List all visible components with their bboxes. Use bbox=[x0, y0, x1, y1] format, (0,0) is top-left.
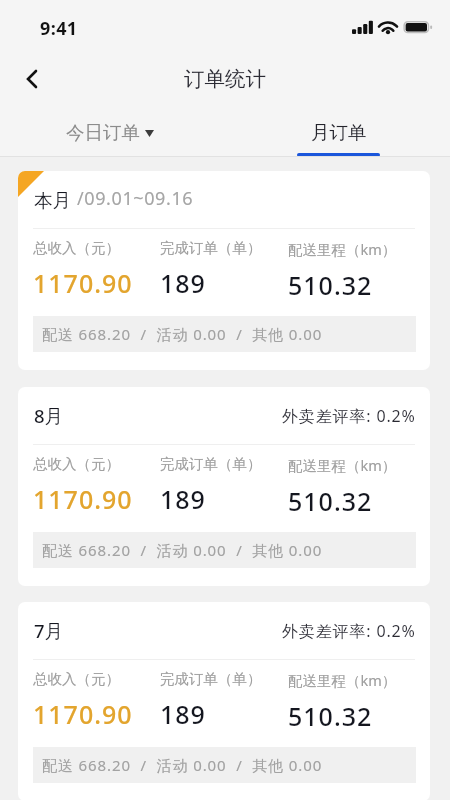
staticText: 配送里程（km） bbox=[288, 239, 397, 259]
staticText: 订单统计 bbox=[184, 66, 266, 92]
staticText: 总收入（元） bbox=[33, 455, 120, 473]
staticText: 510.32 bbox=[288, 268, 373, 302]
staticText: 配送 668.20 / 活动 0.00 / 其他 0.00 bbox=[42, 324, 323, 344]
staticText: 7月 bbox=[34, 618, 64, 643]
staticText: /09.01~09.16 bbox=[77, 186, 194, 211]
button[interactable]: 今日订单 bbox=[42, 110, 178, 154]
button[interactable]: 8月 bbox=[18, 387, 430, 586]
button[interactable]: Back bbox=[8, 56, 54, 102]
staticText: 完成订单（单） bbox=[160, 455, 262, 473]
staticText: 外卖差评率: 0.2% bbox=[282, 620, 416, 642]
staticText: 8月 bbox=[34, 403, 64, 428]
staticText: 9:41 bbox=[40, 16, 78, 41]
staticText: 完成订单（单） bbox=[160, 239, 262, 257]
staticText: 1170.90 bbox=[33, 482, 133, 516]
staticText: 1170.90 bbox=[33, 266, 133, 300]
staticText: 总收入（元） bbox=[33, 670, 120, 688]
staticText: 外卖差评率: 0.2% bbox=[282, 405, 416, 427]
staticText: 今日订单 bbox=[66, 121, 140, 144]
staticText: 510.32 bbox=[288, 484, 373, 518]
staticText: 189 bbox=[160, 482, 206, 516]
staticText: 本月 bbox=[34, 189, 71, 212]
staticText: 189 bbox=[160, 266, 206, 300]
button[interactable]: 7月 bbox=[18, 602, 430, 800]
button[interactable]: 月订单 bbox=[282, 110, 394, 157]
staticText: 189 bbox=[160, 697, 206, 731]
staticText: 配送 668.20 / 活动 0.00 / 其他 0.00 bbox=[42, 755, 323, 775]
staticText: 月订单 bbox=[311, 121, 367, 144]
button[interactable]: 本月 bbox=[18, 171, 430, 370]
staticText: 配送 668.20 / 活动 0.00 / 其他 0.00 bbox=[42, 540, 323, 560]
staticText: 510.32 bbox=[288, 699, 373, 733]
staticText: 总收入（元） bbox=[33, 239, 120, 257]
staticText: 配送里程（km） bbox=[288, 670, 397, 690]
staticText: 1170.90 bbox=[33, 697, 133, 731]
staticText: 完成订单（单） bbox=[160, 670, 262, 688]
staticText: 配送里程（km） bbox=[288, 455, 397, 475]
